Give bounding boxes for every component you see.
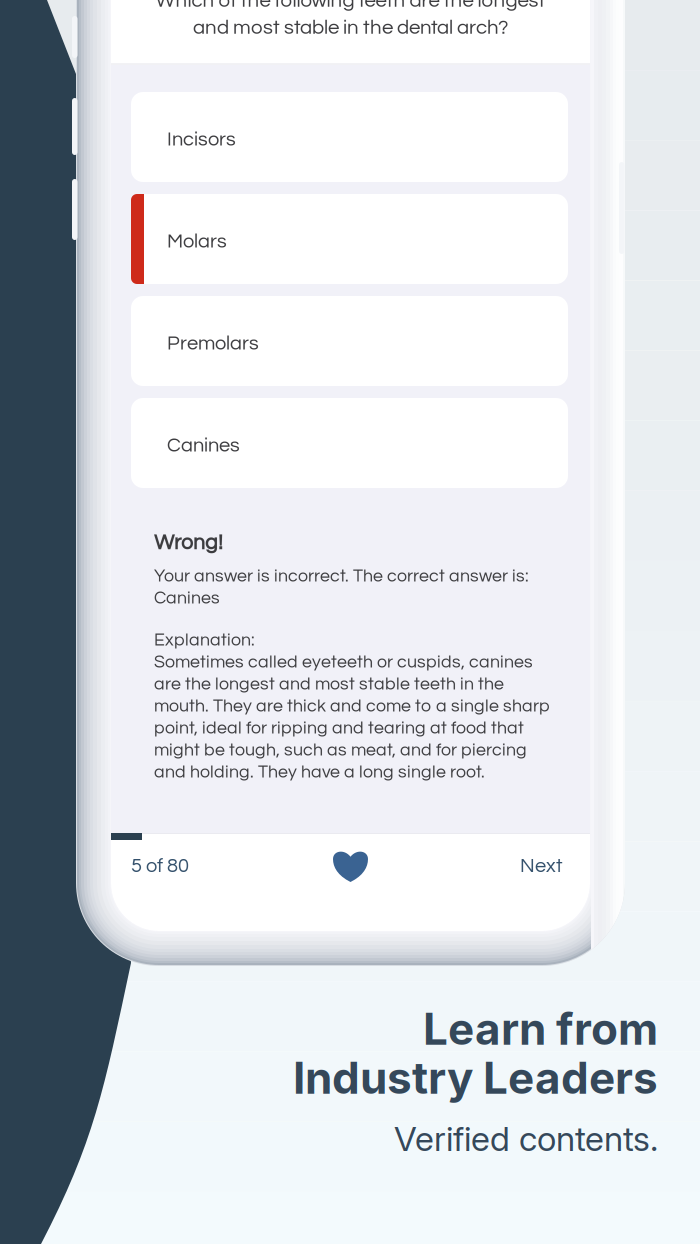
staticText: and holding. They have a long single roo… (154, 763, 485, 781)
staticText: Canines (167, 435, 240, 456)
button[interactable]: Incisors (131, 92, 568, 182)
staticText: Learn from (423, 1002, 658, 1055)
staticText: mouth. They are thick and come to a sing… (154, 697, 550, 715)
staticText: Canines (154, 589, 220, 607)
staticText: Premolars (167, 333, 259, 354)
staticText: Incisors (167, 129, 236, 150)
button[interactable]: Favourite (322, 840, 378, 892)
button[interactable]: Premolars (131, 296, 568, 386)
staticText: Explanation: (154, 631, 255, 649)
staticText: point, ideal for ripping and tearing at … (154, 719, 524, 737)
button[interactable]: Molars (131, 194, 568, 284)
staticText: and most stable in the dental arch? (193, 17, 508, 38)
staticText: Next (520, 856, 563, 876)
staticText: might be tough, such as meat, and for pi… (154, 741, 527, 759)
staticText: Which of the following teeth are the lon… (155, 0, 545, 11)
staticText: Wrong! (154, 532, 223, 554)
staticText: Sometimes called eyeteeth or cuspids, ca… (154, 653, 533, 671)
staticText: 5 of 80 (131, 856, 189, 876)
staticText: Molars (167, 231, 227, 252)
staticText: Verified contents. (394, 1118, 658, 1159)
button[interactable]: Next (473, 840, 563, 892)
button[interactable]: Canines (131, 398, 568, 488)
staticText: Industry Leaders (293, 1051, 658, 1104)
staticText: Your answer is incorrect. The correct an… (154, 567, 529, 585)
staticText: are the longest and most stable teeth in… (154, 675, 504, 693)
button[interactable]: 5 of 80 (131, 840, 251, 892)
